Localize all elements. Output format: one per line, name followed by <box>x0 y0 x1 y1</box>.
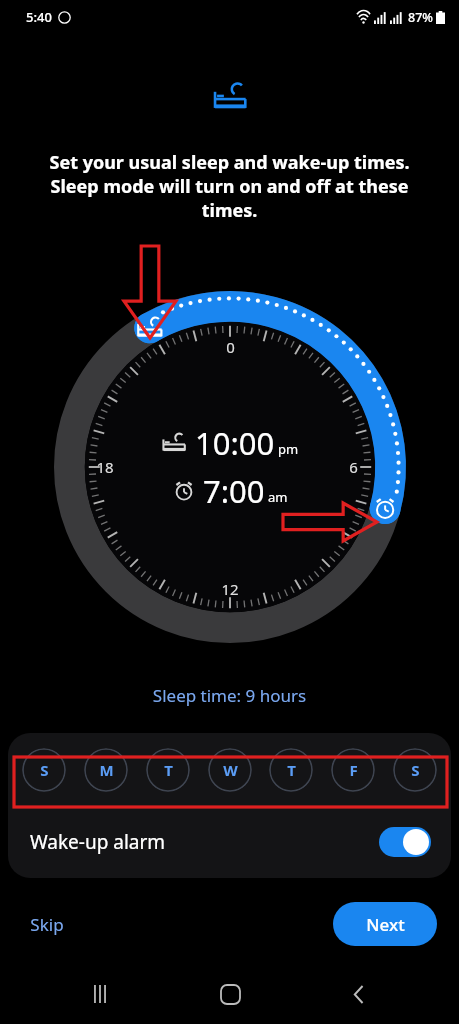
button[interactable]: M <box>84 748 128 792</box>
staticText: pm <box>278 440 299 458</box>
staticText: 10:00 <box>195 422 275 464</box>
staticText: am <box>268 488 288 506</box>
button[interactable]: F <box>331 748 375 792</box>
staticText: 5:40 <box>26 8 52 26</box>
button[interactable]: Wake-up alarm toggle <box>379 827 431 857</box>
staticText: F <box>349 760 358 780</box>
staticText: Sleep time: 9 hours <box>0 684 459 707</box>
button[interactable]: S <box>22 748 66 792</box>
staticText: M <box>99 760 114 780</box>
staticText: 12 <box>221 579 239 599</box>
staticText: 87% <box>408 9 433 26</box>
staticText: 18 <box>96 457 114 477</box>
staticText: S <box>40 760 49 780</box>
staticText: Skip <box>30 913 64 936</box>
staticText: 6 <box>349 457 358 477</box>
button[interactable]: Recents <box>71 965 129 1023</box>
staticText: S <box>411 760 420 780</box>
button[interactable]: W <box>208 748 252 792</box>
button[interactable]: T <box>269 748 313 792</box>
staticText: 0 <box>226 337 235 357</box>
staticText: T <box>287 760 296 780</box>
button[interactable]: Wake-up alarm <box>8 806 451 878</box>
staticText: W <box>223 760 238 780</box>
staticText: Set your usual sleep and wake-up times. … <box>34 150 425 222</box>
button[interactable]: Back <box>330 965 388 1023</box>
staticText: Next <box>366 913 405 936</box>
staticText: 7:00 <box>203 470 265 512</box>
button[interactable]: S <box>393 748 437 792</box>
button[interactable]: Skip <box>18 905 76 944</box>
button[interactable]: Home <box>201 965 259 1023</box>
staticText: Wake-up alarm <box>30 829 379 855</box>
button[interactable]: T <box>146 748 190 792</box>
staticText: T <box>164 760 173 780</box>
button[interactable]: Next <box>333 902 437 946</box>
